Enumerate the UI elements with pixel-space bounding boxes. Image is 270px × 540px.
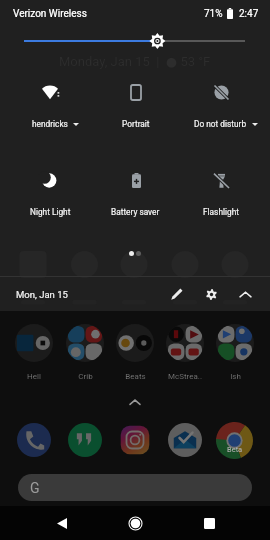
button[interactable]: Beats	[111, 324, 159, 381]
button[interactable]: Edit	[166, 283, 188, 305]
button[interactable]: Home	[120, 506, 150, 540]
staticText: Beta	[227, 445, 243, 454]
button[interactable]: Phone	[17, 423, 51, 457]
staticText: Beats	[125, 372, 146, 381]
staticText: Flashlight	[203, 207, 239, 217]
button[interactable]: Hangouts	[68, 423, 102, 457]
button[interactable]	[0, 27, 270, 57]
button[interactable]: Back	[47, 506, 77, 540]
button[interactable]: hendricks	[7, 84, 93, 129]
button[interactable]: Collapse	[234, 283, 256, 305]
button[interactable]: Crib	[61, 324, 109, 381]
staticText: Crib	[78, 372, 93, 381]
button[interactable]: G	[18, 474, 252, 501]
staticText: Night Light	[30, 207, 71, 217]
staticText: 71%	[204, 8, 223, 20]
staticText: Battery saver	[111, 207, 160, 217]
staticText: Hell	[27, 372, 41, 381]
staticText: Verizon Wireless	[13, 8, 87, 20]
button[interactable]: Portrait	[93, 84, 178, 129]
button[interactable]: Battery saver	[93, 172, 178, 217]
staticText: G	[30, 480, 40, 496]
staticText: 2:47	[239, 8, 259, 20]
staticText: hendricks	[32, 119, 68, 129]
staticText: McStrea..	[168, 372, 202, 381]
button[interactable]: McStrea..	[161, 324, 209, 381]
button[interactable]: Night Light	[7, 172, 93, 217]
button[interactable]: Chrome Beta	[216, 422, 253, 459]
button[interactable]: Ish	[211, 324, 259, 381]
staticText: Mon, Jan 15	[16, 289, 68, 300]
button[interactable]: Instagram	[118, 423, 152, 457]
button[interactable]: Hell	[10, 324, 58, 381]
staticText: Portrait	[122, 119, 150, 129]
button[interactable]: Inbox	[168, 423, 202, 457]
button[interactable]: Settings	[200, 283, 222, 305]
button[interactable]: Recents	[194, 506, 224, 540]
button[interactable]: Flashlight	[178, 172, 263, 217]
staticText: Monday, Jan 15 | ● 53 °F	[59, 54, 211, 69]
staticText: Ish	[230, 372, 241, 381]
staticText: Do not disturb	[194, 119, 247, 129]
button[interactable]: Do not disturb	[178, 84, 263, 129]
